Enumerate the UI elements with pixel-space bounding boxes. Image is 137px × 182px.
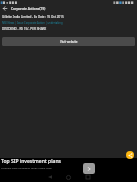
button[interactable]: Gillette India Limited - Ex Date : 15 Oc… bbox=[0, 14, 137, 33]
staticText: Compare Direct & Regular funds. Invest n… bbox=[1, 166, 52, 169]
button[interactable]: Recent apps bbox=[78, 172, 97, 182]
button[interactable]: Top SIP investment plans bbox=[1, 158, 61, 165]
button[interactable]: Visit website bbox=[2, 37, 135, 46]
staticText: Visit website bbox=[60, 40, 78, 44]
staticText: Gillette India Limited - Ex Date : 15 Oc… bbox=[2, 15, 64, 19]
button[interactable]: Share bbox=[126, 151, 134, 159]
button[interactable]: Home bbox=[59, 172, 78, 182]
button[interactable]: Corporate Actions(19) bbox=[11, 6, 46, 10]
button[interactable]: Back bbox=[40, 172, 59, 182]
button[interactable]: Open offer bbox=[83, 163, 95, 174]
button[interactable]: Back bbox=[0, 4, 10, 13]
staticText: DIVIDEND - RS 15/- PER SHARE bbox=[2, 27, 47, 31]
staticText: NSE News | Issue Corporate Action | unde… bbox=[2, 21, 63, 25]
